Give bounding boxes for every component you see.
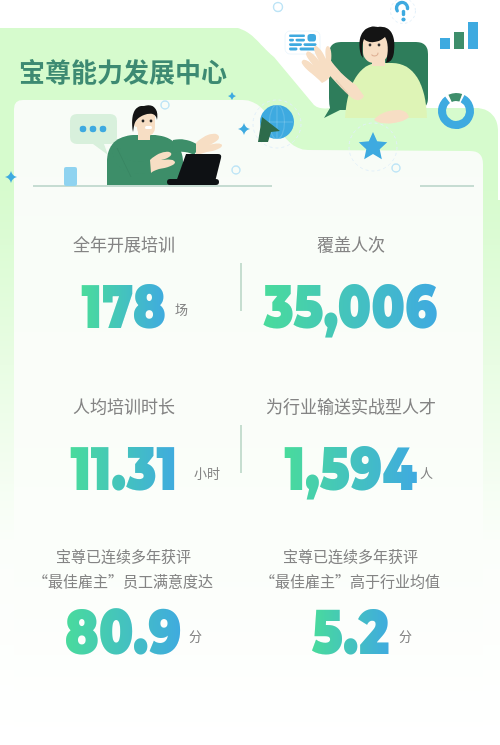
staticText: 全年开展培训: [73, 231, 175, 256]
button[interactable]: 覆盖人次: [237, 231, 464, 343]
staticText: 覆盖人次: [317, 231, 385, 256]
button[interactable]: 全年开展培训: [10, 231, 237, 343]
staticText: 为行业输送实战型人才: [266, 393, 436, 418]
button[interactable]: 宝尊已连续多年获评: [10, 545, 237, 670]
staticText: 5.2: [312, 593, 390, 670]
staticText: 场: [175, 299, 189, 318]
staticText: “最佳雇主”员工满意度达: [33, 570, 214, 592]
staticText: 人: [420, 463, 434, 482]
staticText: 宝尊已连续多年获评: [283, 545, 419, 567]
staticText: 11.31: [70, 431, 178, 505]
staticText: 宝尊能力发展中心: [19, 52, 228, 90]
staticText: 宝尊已连续多年获评: [56, 545, 192, 567]
staticText: 1,594: [285, 431, 417, 505]
button[interactable]: 宝尊已连续多年获评: [237, 545, 464, 670]
button[interactable]: 人均培训时长: [10, 393, 237, 505]
button[interactable]: 为行业输送实战型人才: [237, 393, 464, 505]
staticText: 分: [189, 626, 203, 645]
staticText: 人均培训时长: [73, 393, 175, 418]
staticText: 178: [82, 269, 166, 343]
staticText: 80.9: [65, 593, 182, 670]
staticText: 35,006: [264, 269, 437, 343]
staticText: 分: [399, 626, 413, 645]
staticText: 小时: [194, 463, 221, 482]
staticText: “最佳雇主”高于行业均值: [260, 570, 441, 592]
